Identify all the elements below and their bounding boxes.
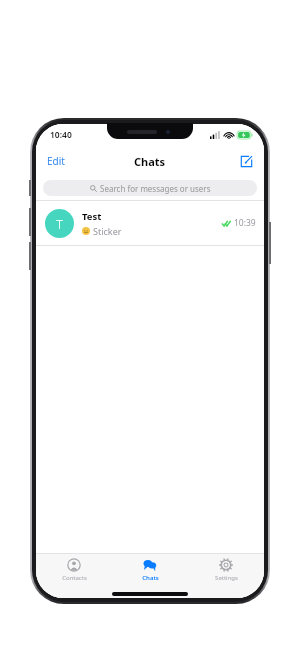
button[interactable]: Settings	[188, 554, 264, 586]
staticText: 10:40	[50, 129, 72, 141]
staticText: 10:39	[234, 217, 256, 229]
staticText: Test	[82, 210, 102, 223]
button[interactable]: T	[36, 201, 264, 245]
button[interactable]: Chats	[112, 554, 188, 586]
button[interactable]: Compose new message	[229, 150, 264, 173]
staticText: Search for messages or users	[100, 183, 211, 194]
staticText: Contacts	[62, 574, 87, 582]
staticText: Chats	[134, 154, 166, 169]
button[interactable]: Edit	[36, 149, 76, 173]
button[interactable]: Search for messages or users	[43, 180, 257, 196]
staticText: Sticker	[93, 225, 122, 237]
staticText: Chats	[142, 574, 159, 582]
staticText: Edit	[47, 154, 65, 168]
staticText: Settings	[215, 574, 238, 582]
staticText: T	[56, 215, 63, 233]
button[interactable]: Contacts	[36, 554, 112, 586]
